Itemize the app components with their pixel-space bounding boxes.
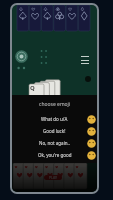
staticText: No, not again.. (39, 140, 70, 146)
button[interactable]: Your hand (13, 162, 87, 190)
button[interactable]: Player avatar (15, 50, 28, 63)
button[interactable]: What do u/A (12, 113, 97, 125)
button[interactable]: choose emoji (12, 95, 97, 113)
staticText: Ok, you're good (38, 152, 72, 158)
staticText: choose emoji (39, 101, 71, 108)
button[interactable]: Good luck! (12, 125, 97, 137)
button[interactable]: PLAY (44, 175, 62, 180)
staticText: Q (30, 84, 35, 92)
button[interactable]: Menu (81, 56, 89, 64)
button[interactable]: Ok, you're good (12, 149, 97, 161)
button[interactable]: Opponent hand (17, 5, 90, 31)
staticText: Good luck! (43, 128, 66, 134)
staticText: PLAY (49, 175, 57, 180)
staticText: What do u/A (41, 116, 68, 122)
button[interactable]: No, not again.. (12, 137, 97, 149)
